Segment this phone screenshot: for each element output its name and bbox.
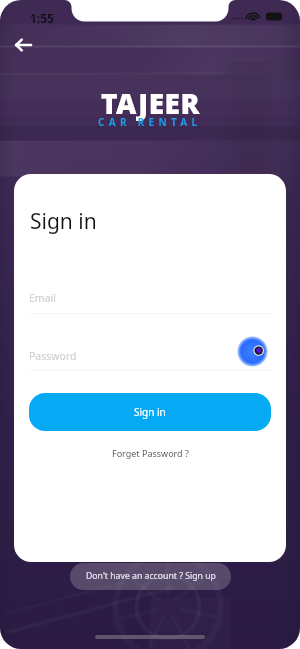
staticText: Forget Password ? [112, 447, 189, 459]
staticText: Email [29, 291, 56, 305]
staticText: Sign in [134, 405, 166, 419]
button[interactable]: Don't have an account ? Sign up [70, 563, 231, 590]
button[interactable]: Forget Password ? [106, 444, 195, 462]
staticText: Sign in [30, 207, 97, 236]
button[interactable]: Sign in [29, 393, 271, 431]
button[interactable]: Show password [237, 336, 268, 367]
staticText: TAJEER [101, 84, 200, 122]
staticText: CAR RENTAL [98, 115, 202, 129]
button[interactable]: Back [10, 32, 36, 58]
staticText: 1:55 [30, 10, 54, 26]
staticText: Password [29, 349, 77, 363]
staticText: Don't have an account ? Sign up [86, 570, 216, 582]
